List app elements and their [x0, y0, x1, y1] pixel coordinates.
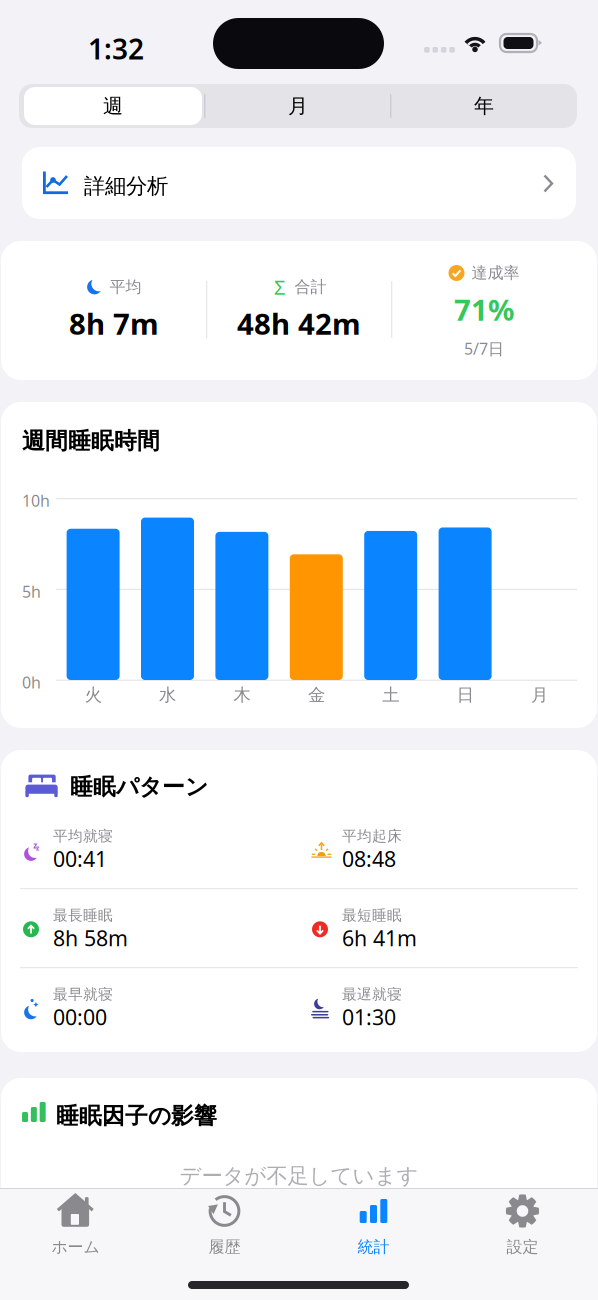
staticText: 10h [22, 490, 50, 511]
staticText: 年 [474, 94, 494, 118]
staticText: 平均 [109, 277, 141, 297]
staticText: 8h 7m [69, 304, 159, 343]
button[interactable]: 週 [24, 87, 202, 125]
button[interactable]: 統計 [299, 1194, 448, 1264]
staticText: 月 [531, 684, 548, 706]
staticText: 週 [103, 94, 123, 118]
staticText: データが不足しています [179, 1163, 418, 1189]
staticText: 6h 41m [342, 924, 417, 952]
staticText: ホーム [51, 1237, 99, 1257]
staticText: 木 [233, 684, 250, 706]
staticText: Σ [274, 274, 285, 300]
button[interactable]: 履歴 [150, 1194, 299, 1264]
staticText: 5/7日 [464, 338, 504, 359]
staticText: 週間睡眠時間 [22, 427, 160, 455]
staticText: 0h [22, 672, 41, 693]
staticText: 00:41 [53, 844, 107, 873]
staticText: 48h 42m [237, 304, 361, 343]
staticText: 睡眠パターン [70, 773, 208, 801]
staticText: z [33, 840, 37, 851]
staticText: 詳細分析 [84, 173, 168, 199]
staticText: 設定 [506, 1237, 538, 1257]
staticText: 日 [457, 684, 474, 706]
staticText: 金 [308, 684, 325, 706]
staticText: 達成率 [471, 263, 519, 283]
staticText: 00:00 [53, 1003, 107, 1031]
button[interactable]: 設定 [448, 1194, 597, 1264]
staticText: 01:30 [342, 1003, 396, 1031]
button[interactable]: ホーム [1, 1194, 150, 1264]
staticText: 最短睡眠 [342, 906, 402, 924]
staticText: 合計 [294, 277, 326, 297]
staticText: 最遅就寝 [342, 985, 402, 1003]
staticText: 8h 58m [53, 924, 128, 952]
staticText: 水 [159, 684, 176, 706]
staticText: 1:32 [88, 30, 144, 67]
staticText: 統計 [357, 1237, 389, 1257]
staticText: 71% [454, 290, 514, 329]
staticText: 平均起床 [342, 827, 402, 845]
staticText: 火 [85, 684, 102, 706]
staticText: 履歴 [208, 1237, 240, 1257]
staticText: 08:48 [342, 844, 396, 873]
staticText: z [36, 844, 39, 852]
staticText: 月 [288, 94, 308, 118]
button[interactable]: 月 [206, 87, 390, 125]
staticText: 最早就寝 [53, 985, 113, 1003]
staticText: 土 [382, 684, 399, 706]
button[interactable]: 年 [392, 87, 576, 125]
staticText: 平均就寝 [53, 827, 113, 845]
staticText: 睡眠因子の影響 [56, 1102, 217, 1130]
staticText: 5h [22, 581, 41, 602]
button[interactable]: 詳細分析 [22, 147, 576, 219]
staticText: 最長睡眠 [53, 906, 113, 924]
